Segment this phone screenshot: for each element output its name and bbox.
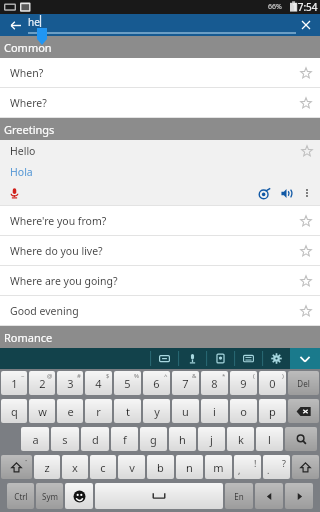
button[interactable]: x <box>62 455 88 479</box>
button[interactable]: Where? <box>0 88 320 117</box>
staticText: k <box>238 432 244 447</box>
button[interactable]: 1 <box>1 371 27 395</box>
button[interactable]: n <box>176 455 203 479</box>
button[interactable]: Where are you going? <box>0 266 320 295</box>
button[interactable]: Navigate up <box>6 16 24 34</box>
button[interactable]: Good evening <box>0 296 320 325</box>
button[interactable]: z <box>34 455 60 479</box>
button[interactable]: c <box>90 455 116 479</box>
button[interactable]: Sym <box>36 483 63 509</box>
staticText: d <box>92 432 99 447</box>
staticText: $ <box>106 372 110 380</box>
button[interactable]: Voice input <box>178 348 206 369</box>
button[interactable]: Move cursor right <box>285 483 313 509</box>
button[interactable]: Del <box>288 371 319 395</box>
button[interactable]: Favourite Where? <box>292 89 320 117</box>
staticText: x <box>72 460 78 475</box>
button[interactable]: Keyboard settings <box>262 348 290 369</box>
staticText: Common <box>4 40 52 55</box>
button[interactable]: 7 <box>172 371 199 395</box>
button[interactable]: u <box>172 399 199 423</box>
button[interactable]: a <box>21 427 49 451</box>
staticText: 5 <box>124 376 131 391</box>
button[interactable]: Favourite Where're you from? <box>292 207 320 235</box>
button[interactable]: Shift <box>1 455 32 479</box>
button[interactable]: 5 <box>114 371 141 395</box>
staticText: 1 <box>11 376 18 391</box>
button[interactable]: 8 <box>201 371 228 395</box>
button[interactable]: k <box>227 427 254 451</box>
button[interactable]: q <box>1 399 27 423</box>
staticText: u <box>182 404 189 419</box>
button[interactable]: b <box>147 455 174 479</box>
staticText: 66% <box>268 2 282 12</box>
button[interactable]: Record voice <box>3 182 25 204</box>
button[interactable]: d <box>81 427 109 451</box>
button[interactable]: ,! <box>234 455 261 479</box>
button[interactable]: w <box>29 399 55 423</box>
staticText: ? <box>282 457 286 469</box>
button[interactable]: f <box>111 427 138 451</box>
button[interactable]: 0 <box>259 371 286 395</box>
button[interactable]: Backspace <box>288 399 319 423</box>
button[interactable]: g <box>140 427 167 451</box>
button[interactable]: Favourite Where are you going? <box>292 267 320 295</box>
staticText: When? <box>10 66 292 80</box>
button[interactable]: Move cursor left <box>255 483 283 509</box>
staticText: o <box>240 404 247 419</box>
button[interactable]: Conjugate verb <box>253 182 275 204</box>
button[interactable]: y <box>143 399 170 423</box>
button[interactable]: Emoji <box>65 483 93 509</box>
staticText: 0 <box>269 376 276 391</box>
button[interactable]: 9 <box>230 371 257 395</box>
button[interactable]: Play pronunciation <box>275 182 297 204</box>
button[interactable]: Clipboard <box>150 348 178 369</box>
button[interactable]: Images <box>206 348 234 369</box>
button[interactable]: Hello <box>0 140 320 162</box>
staticText: ) <box>282 372 284 380</box>
button[interactable]: r <box>85 399 112 423</box>
button[interactable]: Favourite Hello <box>294 140 320 162</box>
button[interactable]: Where're you from? <box>0 206 320 235</box>
button[interactable]: m <box>205 455 232 479</box>
staticText: b <box>157 460 164 475</box>
button[interactable]: Space <box>95 483 223 509</box>
button[interactable]: l <box>256 427 283 451</box>
button[interactable]: .? <box>263 455 290 479</box>
button[interactable]: 3 <box>57 371 83 395</box>
staticText: En <box>234 491 244 502</box>
button[interactable]: 4 <box>85 371 112 395</box>
staticText: Hola <box>10 165 33 179</box>
button[interactable]: p <box>259 399 286 423</box>
button[interactable]: Favourite Good evening <box>292 297 320 325</box>
button[interactable]: 6 <box>143 371 170 395</box>
button[interactable]: Ctrl <box>7 483 34 509</box>
button[interactable]: En <box>225 483 253 509</box>
button[interactable]: v <box>118 455 145 479</box>
staticText: 17:54 <box>292 0 318 14</box>
staticText: c <box>100 460 106 475</box>
button[interactable]: Search <box>285 427 317 451</box>
button[interactable]: When? <box>0 58 320 87</box>
button[interactable]: Switch keyboard <box>234 348 262 369</box>
button[interactable]: j <box>198 427 225 451</box>
button[interactable]: Favourite When? <box>292 59 320 87</box>
button[interactable]: Hola <box>0 162 320 181</box>
staticText: h <box>179 432 186 447</box>
button[interactable]: 2 <box>29 371 55 395</box>
button[interactable]: Favourite Where do you live? <box>292 237 320 265</box>
button[interactable]: Hide keyboard <box>290 348 320 369</box>
button[interactable]: t <box>114 399 141 423</box>
button[interactable]: s <box>51 427 79 451</box>
button[interactable]: Clear query <box>297 16 315 34</box>
button[interactable]: h <box>169 427 196 451</box>
button[interactable]: i <box>201 399 228 423</box>
button[interactable]: Where do you live? <box>0 236 320 265</box>
staticText: y <box>154 404 160 419</box>
staticText: 6 <box>153 376 160 391</box>
button[interactable]: o <box>230 399 257 423</box>
staticText: v <box>129 460 135 475</box>
button[interactable]: e <box>57 399 83 423</box>
button[interactable]: Shift <box>292 455 319 479</box>
button[interactable]: More options <box>297 183 317 203</box>
